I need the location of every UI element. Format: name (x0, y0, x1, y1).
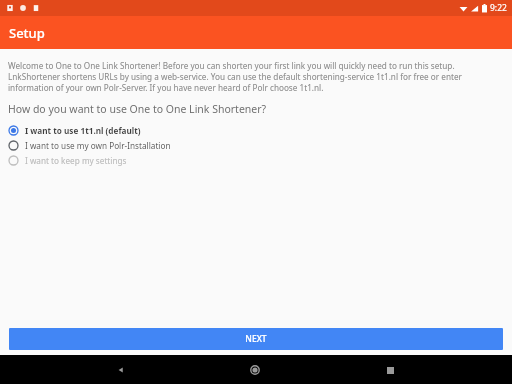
staticText: NEXT (245, 333, 267, 345)
button[interactable]: I want to use 1t1.nl (default) (0, 123, 512, 138)
staticText: 9:22 (490, 2, 507, 14)
staticText: How do you want to use One to One Link S… (8, 102, 267, 116)
staticText: I want to keep my settings (25, 155, 127, 166)
staticText: I want to use 1t1.nl (default) (25, 125, 141, 136)
button[interactable]: Recent apps (377, 357, 403, 383)
staticText: Setup (9, 24, 45, 42)
staticText: I want to use my own Polr-Installation (25, 140, 171, 151)
button[interactable]: NEXT (9, 328, 503, 350)
button[interactable]: I want to use my own Polr-Installation (0, 138, 512, 153)
button[interactable]: Home (242, 357, 268, 383)
staticText: Welcome to One to One Link Shortener! Be… (8, 60, 504, 93)
button[interactable]: I want to keep my settings (0, 153, 512, 168)
button[interactable]: Back (108, 357, 134, 383)
